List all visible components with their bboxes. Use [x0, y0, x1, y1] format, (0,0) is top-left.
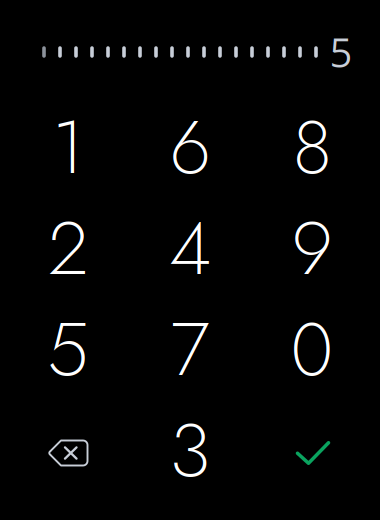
button[interactable]: 2: [7, 198, 129, 298]
button[interactable]: Delete: [7, 403, 129, 503]
button[interactable]: 0: [251, 299, 373, 399]
button[interactable]: 1: [7, 97, 129, 197]
staticText: 7: [170, 295, 209, 403]
button[interactable]: 9: [251, 198, 373, 298]
staticText: 5: [329, 25, 352, 79]
button[interactable]: Confirm: [251, 403, 373, 503]
button[interactable]: 6: [129, 97, 251, 197]
staticText: 8: [292, 93, 331, 201]
staticText: 0: [290, 295, 333, 403]
staticText: 2: [48, 194, 88, 302]
button[interactable]: 4: [129, 198, 251, 298]
staticText: 4: [169, 194, 211, 302]
staticText: 5: [47, 295, 89, 403]
staticText: 9: [291, 194, 332, 302]
button[interactable]: 7: [129, 299, 251, 399]
staticText: 3: [169, 396, 210, 504]
staticText: 1: [52, 93, 84, 201]
button[interactable]: 3: [129, 400, 251, 500]
button[interactable]: 5: [7, 299, 129, 399]
staticText: 6: [169, 93, 210, 201]
button[interactable]: 8: [251, 97, 373, 197]
